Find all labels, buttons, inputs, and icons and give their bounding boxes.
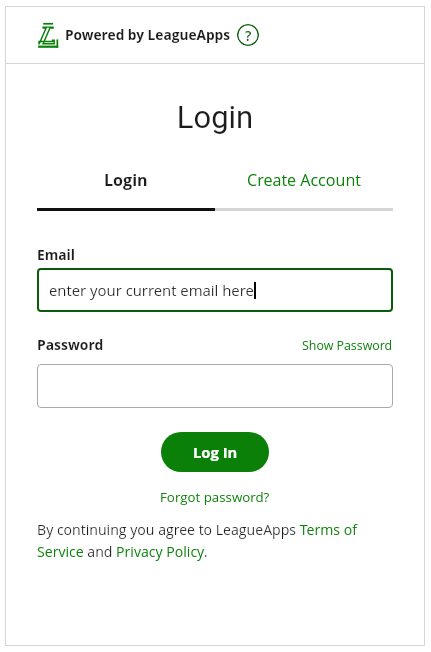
staticText: By continuing you agree to LeagueApps Te… — [37, 520, 393, 561]
button[interactable]: Login — [37, 169, 215, 191]
button[interactable]: Help — [237, 24, 259, 46]
staticText: Log In — [193, 442, 238, 462]
button[interactable] — [37, 364, 393, 408]
button[interactable]: Create Account — [215, 169, 393, 191]
button[interactable]: Show Password — [302, 337, 393, 354]
button[interactable]: Log In — [161, 432, 269, 472]
button[interactable]: enter your current email here — [37, 268, 393, 312]
staticText: Login — [37, 99, 393, 135]
staticText: Login — [104, 169, 148, 191]
staticText: Create Account — [247, 169, 361, 191]
staticText: Show Password — [302, 337, 393, 354]
staticText: enter your current email here — [49, 280, 254, 300]
staticText: Email — [37, 245, 76, 264]
staticText: Password — [37, 335, 104, 354]
staticText: Powered by LeagueApps — [65, 25, 231, 44]
button[interactable]: Forgot password? — [160, 488, 270, 506]
staticText: Forgot password? — [160, 488, 270, 506]
staticText: ? — [245, 26, 252, 45]
